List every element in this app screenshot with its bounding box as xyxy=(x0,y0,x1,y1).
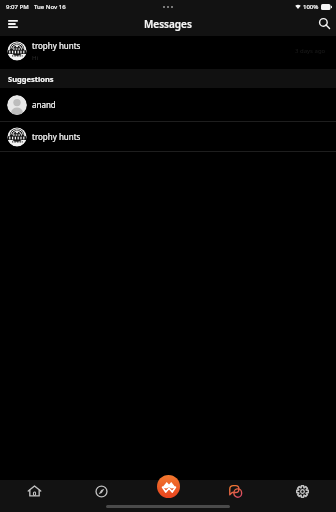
staticText: 3 days ago xyxy=(295,47,326,55)
button[interactable]: Menu xyxy=(1,12,24,35)
button[interactable]: Create post xyxy=(157,475,180,498)
staticText: trophy hunts xyxy=(32,131,81,142)
staticText: Messages xyxy=(144,17,192,31)
button[interactable]: anand xyxy=(0,88,336,121)
staticText: 9:07 PM xyxy=(6,3,29,11)
button[interactable]: trophy hunts xyxy=(0,36,336,69)
button[interactable]: Settings xyxy=(269,480,336,502)
button[interactable]: Explore xyxy=(68,480,135,502)
button[interactable]: Messages xyxy=(202,480,269,502)
staticText: Suggestions xyxy=(8,74,54,84)
button[interactable]: trophy hunts xyxy=(0,122,336,151)
staticText: anand xyxy=(32,99,56,110)
staticText: trophy hunts xyxy=(32,40,81,51)
staticText: 100% xyxy=(303,3,319,11)
button[interactable]: Search xyxy=(313,12,336,35)
staticText: Tue Nov 16 xyxy=(34,3,66,11)
button[interactable]: Home xyxy=(0,480,68,502)
staticText: Hi xyxy=(32,54,38,62)
